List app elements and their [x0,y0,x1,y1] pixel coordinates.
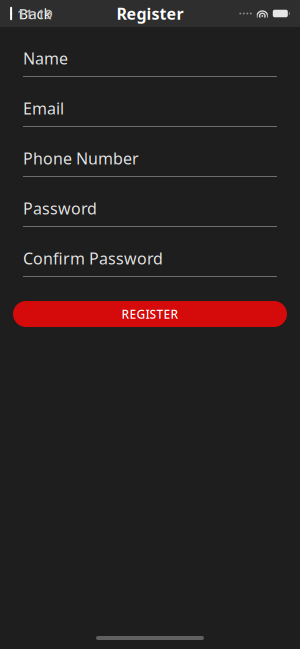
button[interactable]: Phone Number [23,127,277,177]
staticText: Email [23,98,64,119]
button[interactable]: Password [23,177,277,227]
staticText: Password [23,198,97,219]
button[interactable]: Email [23,77,277,127]
button[interactable]: Back [5,0,58,28]
staticText: Register [116,3,183,24]
staticText: REGISTER [121,306,178,322]
button[interactable]: Confirm Password [23,227,277,277]
button[interactable]: REGISTER [23,277,277,327]
staticText: Back [18,4,51,23]
staticText: Confirm Password [23,248,163,269]
staticText: Name [23,48,68,69]
staticText: 11:19 [17,5,53,22]
button[interactable]: Name [23,27,277,77]
staticText: Phone Number [23,148,139,169]
